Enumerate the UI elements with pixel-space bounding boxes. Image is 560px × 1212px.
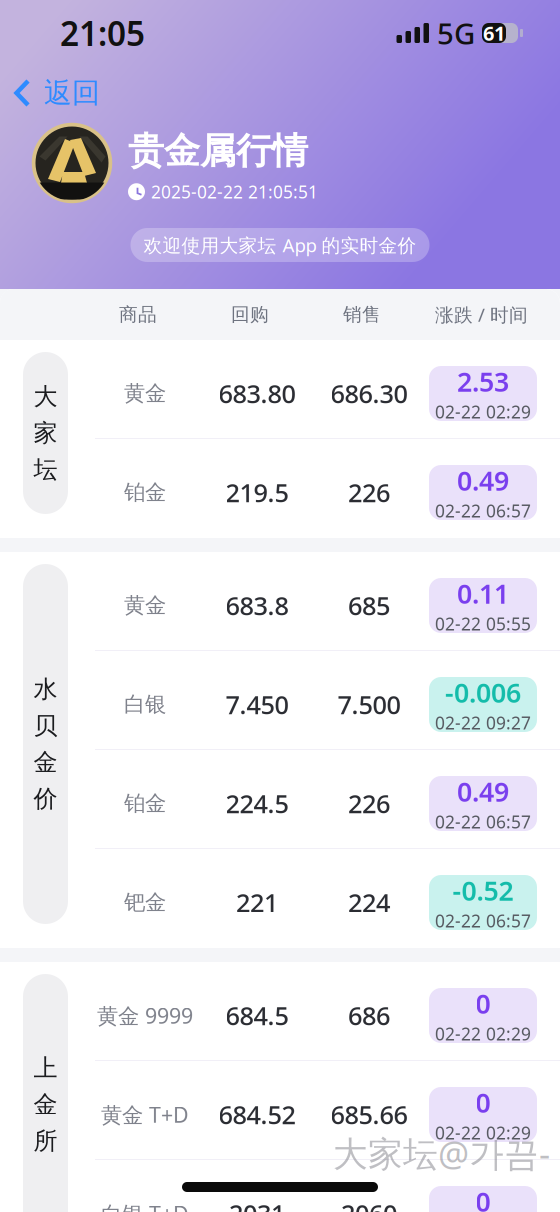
staticText: 黄金 <box>124 380 166 407</box>
staticText: 224.5 <box>225 787 288 820</box>
staticText: 2060 <box>341 1197 397 1212</box>
staticText: 贝 <box>33 711 57 740</box>
staticText: 0 <box>475 986 490 1021</box>
staticText: 回购 <box>231 303 269 326</box>
staticText: 金 <box>33 1090 57 1119</box>
staticText: 铂金 <box>124 479 166 506</box>
staticText: 0.11 <box>457 576 509 611</box>
staticText: 61 <box>483 20 505 46</box>
staticText: 水 <box>33 674 57 704</box>
staticText: 219.5 <box>225 476 288 509</box>
staticText: 坛 <box>33 455 57 484</box>
staticText: 0 <box>475 1184 490 1212</box>
staticText: -0.006 <box>445 675 521 710</box>
staticText: 02-22 06:57 <box>435 810 531 833</box>
staticText: 返回 <box>44 76 100 110</box>
button[interactable]: 返回 <box>0 66 114 120</box>
staticText: 02-22 02:29 <box>435 1022 531 1045</box>
staticText: 贵金属行情 <box>128 129 308 173</box>
staticText: 221 <box>236 886 278 919</box>
staticText: 226 <box>348 787 390 820</box>
staticText: 02-22 06:57 <box>435 499 531 522</box>
staticText: 02-22 05:55 <box>435 612 531 635</box>
staticText: 7.450 <box>225 688 288 721</box>
staticText: 224 <box>348 886 390 919</box>
staticText: 2031 <box>229 1197 285 1212</box>
staticText: 02-22 06:57 <box>435 909 531 932</box>
staticText: 226 <box>348 476 390 509</box>
staticText: 白银 <box>124 691 166 718</box>
staticText: 2.53 <box>457 364 509 399</box>
staticText: 684.52 <box>218 1098 295 1131</box>
staticText: 685.66 <box>330 1098 407 1131</box>
staticText: 21:05 <box>60 11 145 55</box>
staticText: 686.30 <box>330 377 407 410</box>
staticText: 上 <box>33 1053 57 1083</box>
staticText: 所 <box>33 1126 57 1156</box>
staticText: -0.52 <box>452 873 513 908</box>
staticText: 大 <box>33 382 57 411</box>
staticText: 黄金 T+D <box>101 1100 189 1129</box>
staticText: 7.500 <box>337 688 400 721</box>
staticText: 686 <box>348 999 390 1032</box>
staticText: 685 <box>348 589 390 622</box>
staticText: 铂金 <box>124 790 166 817</box>
staticText: 涨跌 / 时间 <box>435 302 528 327</box>
staticText: 家 <box>33 418 57 448</box>
staticText: 5G <box>437 13 475 52</box>
staticText: 0.49 <box>457 774 509 809</box>
staticText: 0 <box>475 1085 490 1120</box>
staticText: 02-22 09:27 <box>435 711 531 734</box>
staticText: 02-22 02:29 <box>435 1121 531 1144</box>
staticText: 2025-02-22 21:05:51 <box>151 180 318 203</box>
staticText: 黄金 <box>124 592 166 619</box>
staticText: 钯金 <box>124 889 166 916</box>
staticText: 白银 T+D <box>101 1199 189 1212</box>
staticText: 大家坛@가끔- <box>333 1130 550 1176</box>
staticText: 商品 <box>119 303 157 326</box>
staticText: 683.80 <box>218 377 295 410</box>
staticText: 684.5 <box>225 999 288 1032</box>
staticText: 683.8 <box>225 589 288 622</box>
staticText: 金 <box>33 747 57 777</box>
staticText: 价 <box>33 784 57 813</box>
staticText: 0.49 <box>457 463 509 498</box>
staticText: 02-22 02:29 <box>435 400 531 423</box>
staticText: 黄金 9999 <box>97 1001 193 1030</box>
staticText: 销售 <box>343 303 381 326</box>
staticText: 欢迎使用大家坛 App 的实时金价 <box>143 233 416 257</box>
